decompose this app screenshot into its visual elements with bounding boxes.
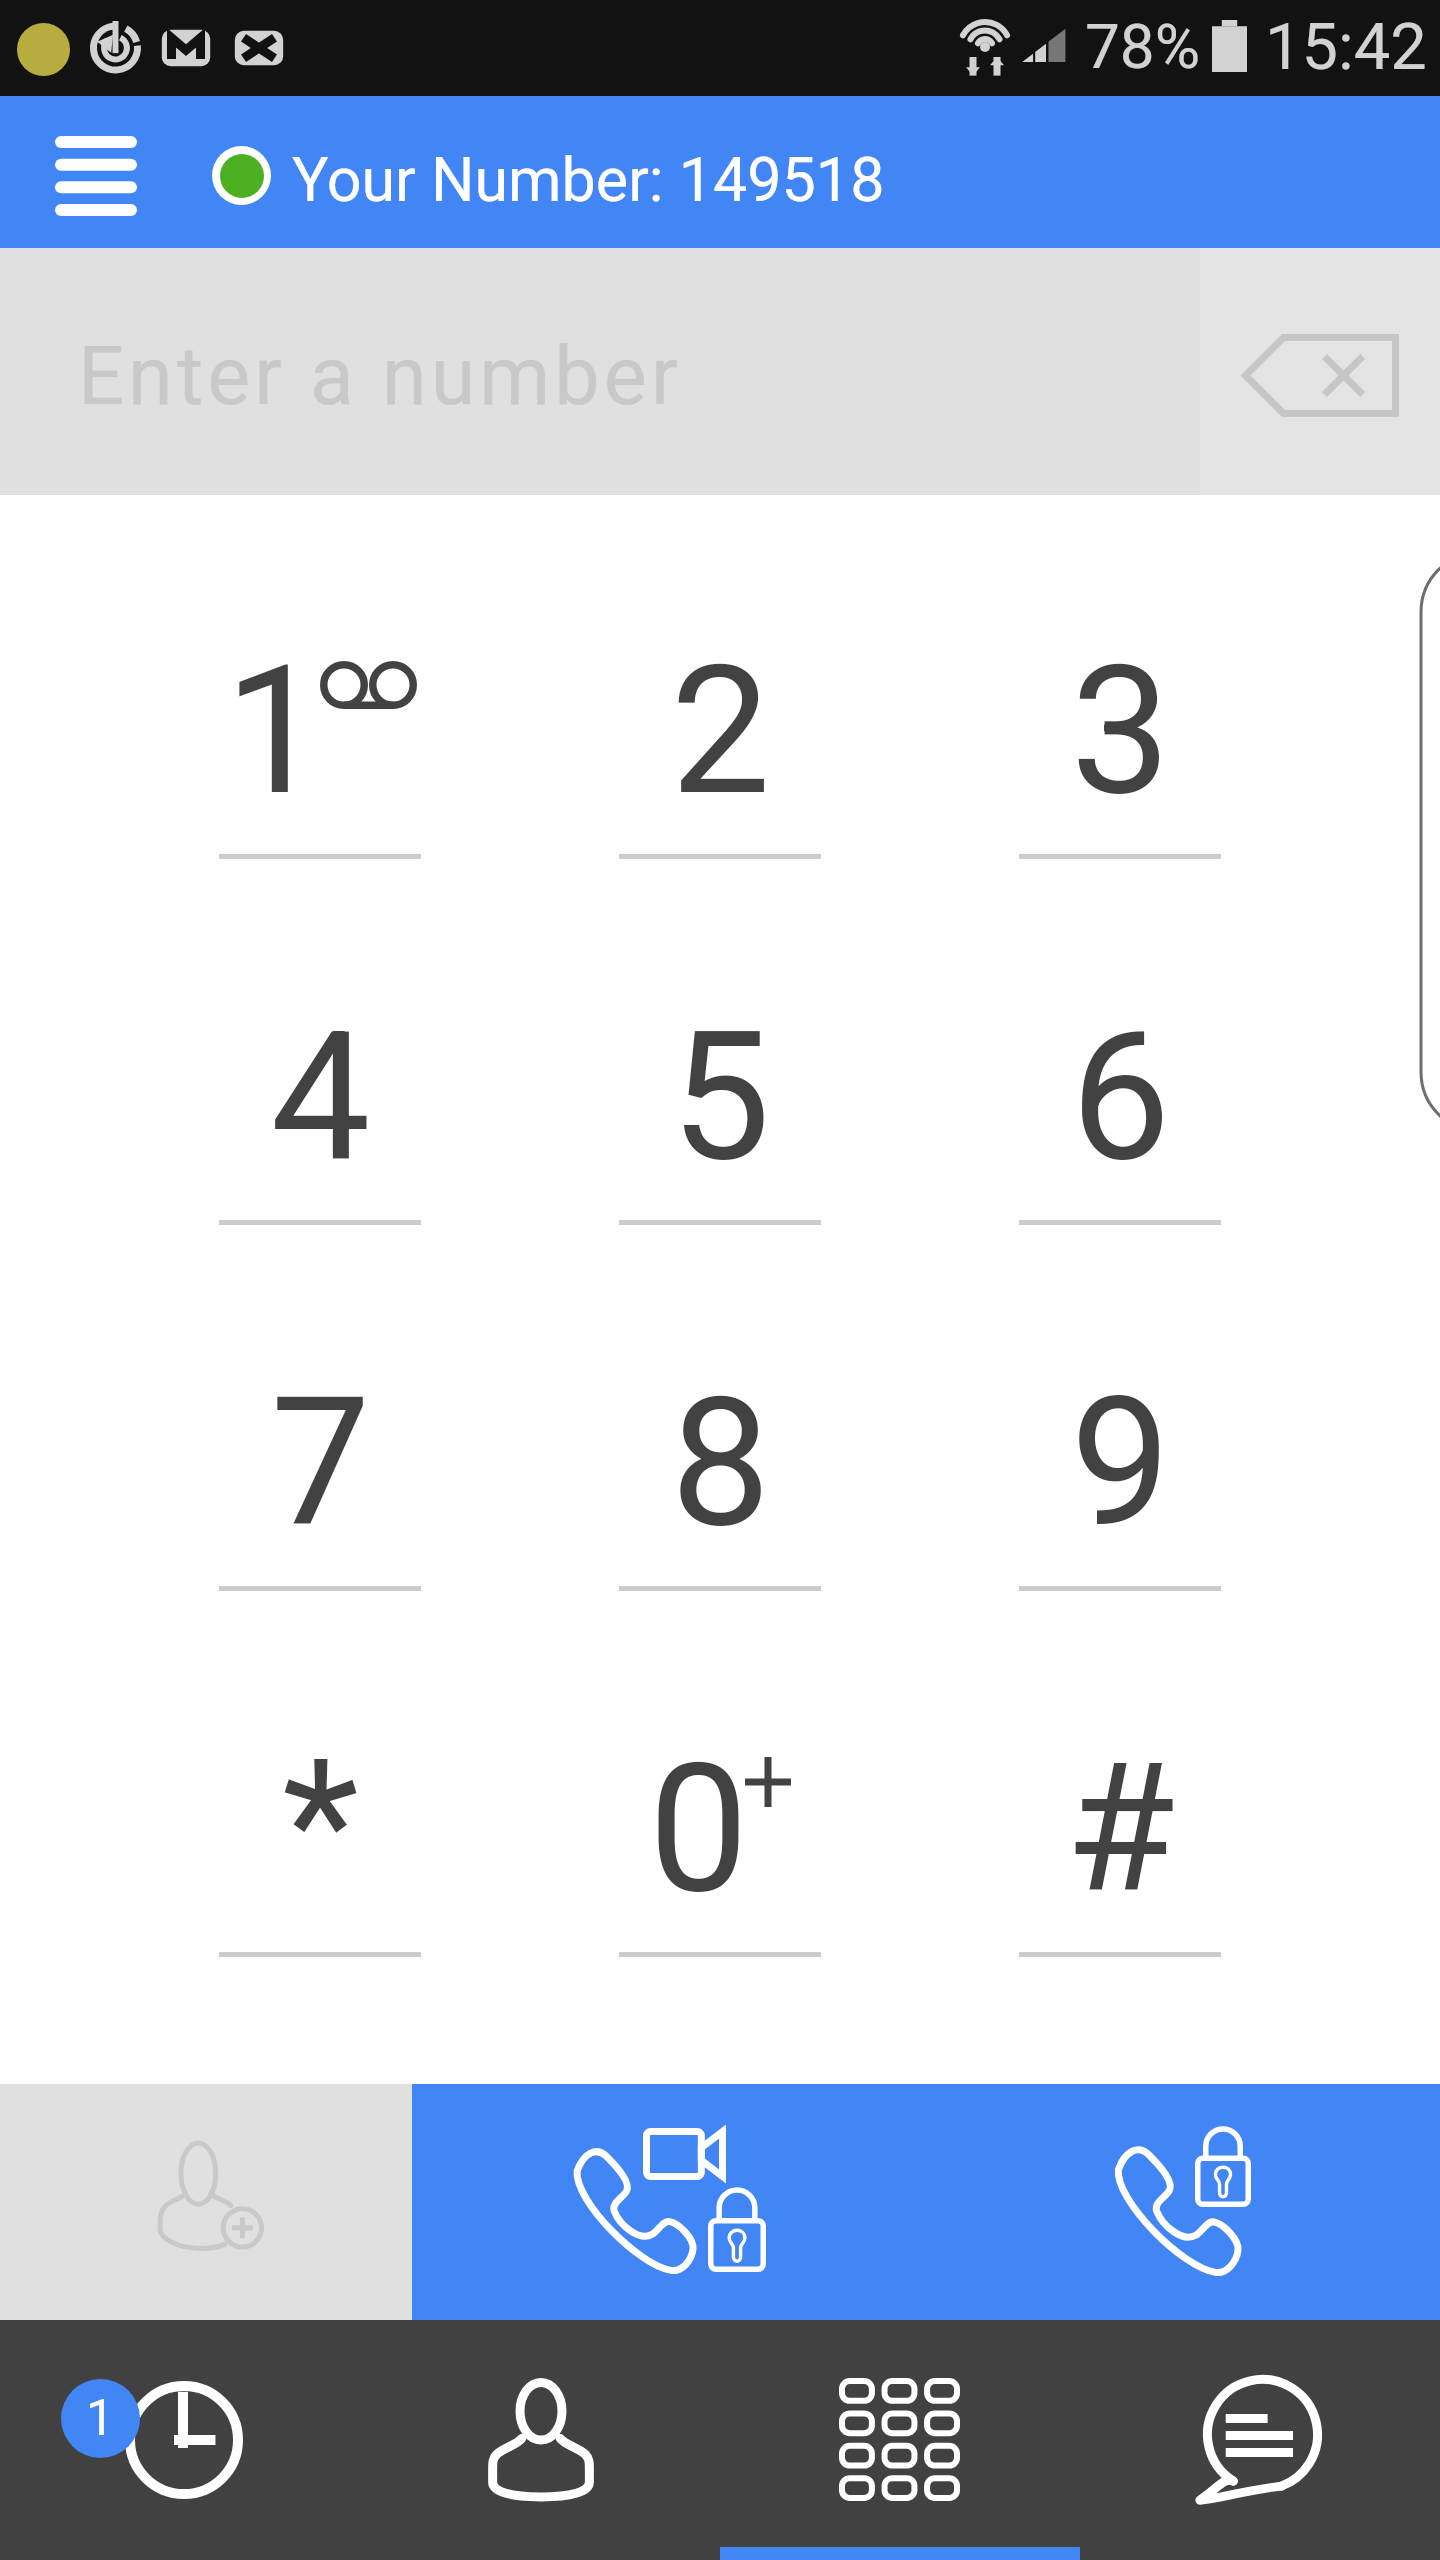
staticText: Enter a number [78, 329, 683, 424]
button[interactable]: 5 [520, 886, 920, 1252]
button[interactable]: 8 [520, 1252, 920, 1618]
button[interactable]: 7 [120, 1252, 520, 1618]
button[interactable]: Enter a number [0, 248, 1200, 495]
staticText: 0 [648, 1725, 749, 1934]
staticText: 1 [86, 2389, 115, 2448]
button[interactable]: pound [920, 1618, 1320, 1984]
button[interactable]: 1 voicemail [120, 520, 520, 886]
staticText: Your Number: 149518 [292, 144, 885, 215]
staticText: 7 [270, 1359, 371, 1568]
button[interactable]: Add contact [0, 2084, 412, 2320]
staticText: 5 [670, 993, 771, 1202]
staticText: 1 [224, 627, 325, 836]
button[interactable]: Messages [1080, 2320, 1440, 2560]
button[interactable]: 9 [920, 1252, 1320, 1618]
staticText: 9 [1070, 1359, 1171, 1568]
button[interactable]: Secure call [926, 2084, 1440, 2320]
button[interactable]: Secure video call [412, 2084, 926, 2320]
button[interactable]: 4 [120, 886, 520, 1252]
staticText: 6 [1070, 993, 1171, 1202]
button[interactable]: 3 [920, 520, 1320, 886]
staticText: 15:42 [1265, 9, 1427, 85]
button[interactable]: Open navigation menu [0, 96, 190, 248]
staticText: 3 [1070, 627, 1171, 836]
button[interactable]: star [120, 1618, 520, 1984]
staticText: 8 [670, 1359, 771, 1568]
staticText: * [282, 1721, 359, 1930]
staticText: 78% [1085, 10, 1201, 83]
button[interactable]: Delete [1200, 248, 1440, 495]
staticText: 2 [670, 627, 771, 836]
button[interactable]: Dialpad [720, 2320, 1080, 2560]
staticText: 4 [270, 993, 371, 1202]
button[interactable]: 0 plus [520, 1618, 920, 1984]
button[interactable]: 6 [920, 886, 1320, 1252]
staticText: # [1065, 1725, 1175, 1934]
button[interactable]: Recent calls [0, 2320, 360, 2560]
button[interactable]: Contacts [360, 2320, 720, 2560]
button[interactable]: 2 [520, 520, 920, 886]
